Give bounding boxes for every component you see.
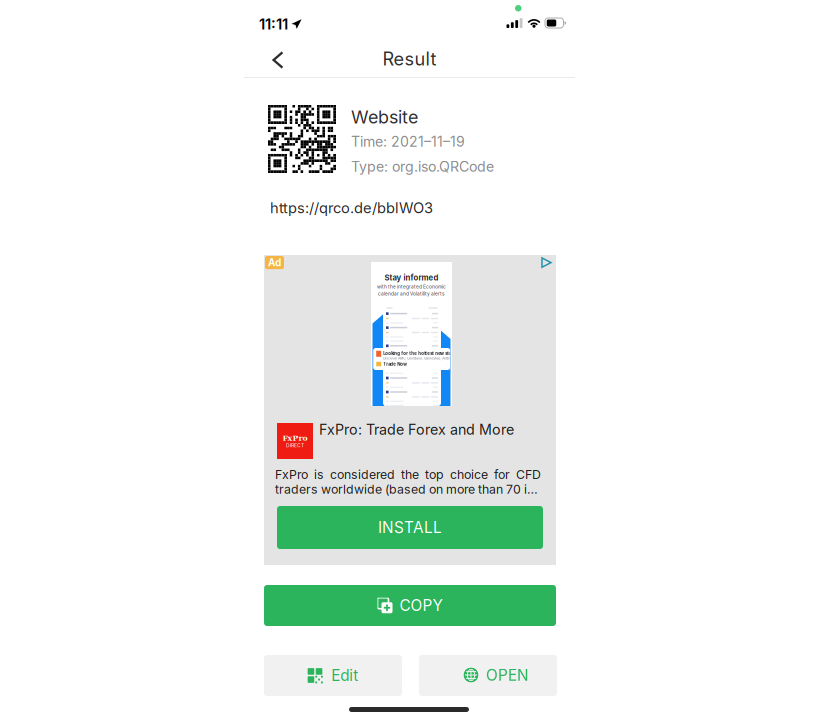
button[interactable]: OPEN [419, 655, 557, 696]
staticText: traders worldwide (based on more than 70… [275, 482, 538, 497]
staticText: COPY [399, 596, 442, 615]
staticText: Trade Now [383, 361, 407, 367]
staticText: https://qrco.de/bblWO3 [270, 199, 433, 217]
staticText: Ad [268, 256, 281, 269]
staticText: calendar and Volatility alerts [378, 291, 445, 297]
staticText: INSTALL [378, 518, 442, 537]
staticText: DIRECT [286, 443, 304, 449]
button[interactable]: Edit [264, 655, 402, 696]
staticText: OPEN [486, 666, 529, 685]
staticText: FxPro: Trade Forex and More [319, 421, 514, 438]
staticText: Stay informed [384, 273, 438, 282]
staticText: Time: 2021–11–19 [351, 133, 465, 150]
staticText: with the integrated Economic [377, 284, 446, 290]
button[interactable]: INSTALL [277, 506, 543, 549]
staticText: FxPro is considered the top choice for C… [275, 467, 541, 482]
staticText: FxPro [282, 433, 307, 443]
staticText: Type: org.iso.QRCode [351, 158, 494, 175]
button[interactable]: COPY [264, 585, 556, 626]
staticText: Edit [331, 666, 358, 685]
staticText: Website [351, 106, 418, 128]
button[interactable]: Back [256, 42, 300, 78]
staticText: 11:11 [259, 15, 288, 33]
staticText: Result [382, 48, 436, 70]
staticText: Looking for the hottest new stocks? [383, 351, 461, 356]
staticText: Discover AMC, CoinBase, GameStop, AirBnB… [383, 357, 465, 360]
